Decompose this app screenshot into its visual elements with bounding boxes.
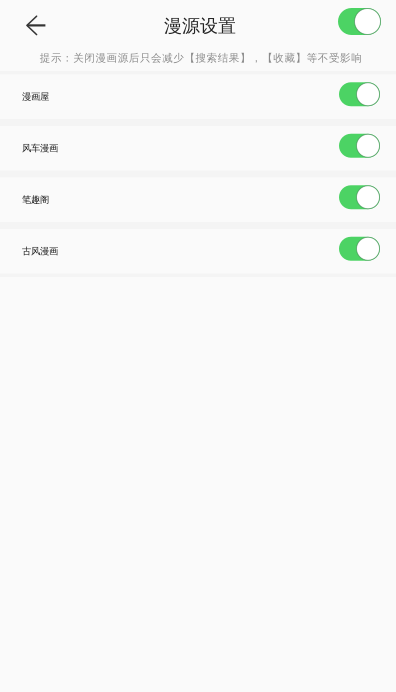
button[interactable]: 笔趣阁	[0, 177, 396, 222]
button[interactable]: 古风漫画 开关	[339, 237, 380, 266]
staticText: 风车漫画	[22, 142, 58, 154]
staticText: 笔趣阁	[22, 194, 49, 206]
button[interactable]: 返回	[0, 0, 60, 48]
staticText: 古风漫画	[22, 245, 58, 257]
staticText: 漫源设置	[164, 15, 236, 37]
button[interactable]: 漫画屋 开关	[339, 82, 380, 111]
button[interactable]: 风车漫画	[0, 126, 396, 170]
button[interactable]: 笔趣阁 开关	[339, 185, 380, 214]
button[interactable]: 古风漫画	[0, 229, 396, 273]
staticText: 提示：关闭漫画源后只会减少【搜索结果】，【收藏】等不受影响	[40, 51, 362, 65]
staticText: 漫画屋	[22, 91, 49, 103]
button[interactable]: 漫源总开关	[338, 0, 396, 48]
button[interactable]: 漫画屋	[0, 74, 396, 119]
button[interactable]: 风车漫画 开关	[339, 134, 380, 163]
